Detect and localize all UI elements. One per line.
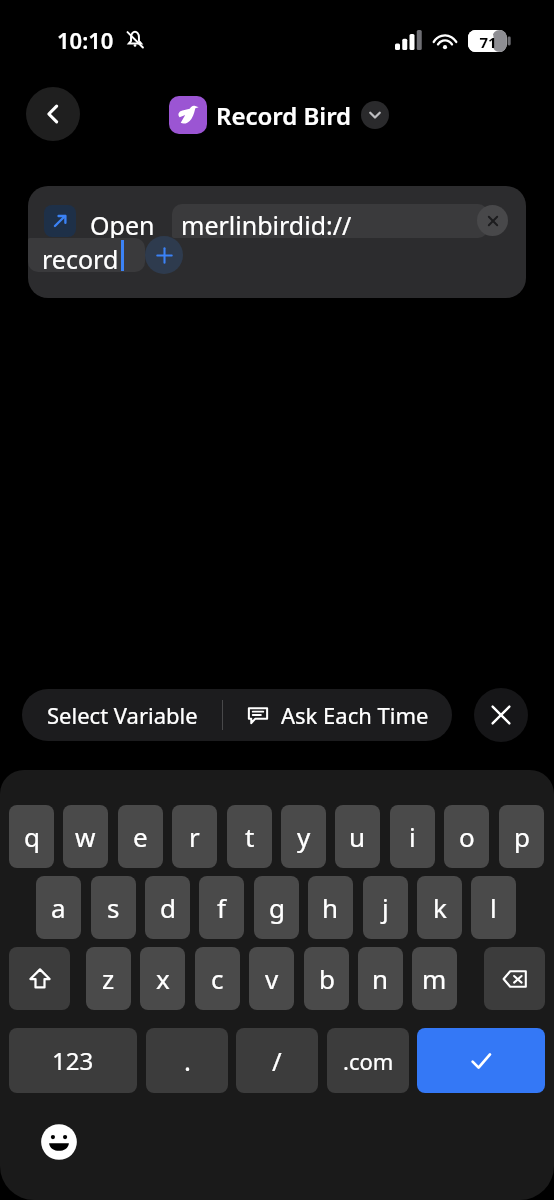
- staticText: i: [409, 819, 416, 854]
- button[interactable]: Shift: [9, 947, 70, 1010]
- staticText: Record Bird: [216, 99, 352, 132]
- staticText: w: [75, 819, 96, 854]
- staticText: 10:10: [57, 25, 114, 55]
- button[interactable]: y: [281, 805, 326, 868]
- staticText: p: [514, 819, 530, 854]
- staticText: j: [382, 890, 389, 925]
- staticText: s: [107, 890, 120, 925]
- staticText: v: [265, 961, 279, 996]
- staticText: t: [245, 819, 255, 854]
- button[interactable]: Done: [417, 1028, 545, 1093]
- button[interactable]: q: [9, 805, 54, 868]
- button[interactable]: Open: [28, 186, 526, 298]
- staticText: b: [319, 961, 335, 996]
- staticText: n: [372, 961, 389, 996]
- button[interactable]: .com: [327, 1028, 409, 1093]
- button[interactable]: a: [36, 876, 81, 939]
- staticText: d: [160, 890, 176, 925]
- staticText: y: [297, 819, 311, 854]
- staticText: Ask Each Time: [281, 700, 429, 730]
- button[interactable]: w: [63, 805, 108, 868]
- button[interactable]: v: [249, 947, 294, 1010]
- button[interactable]: h: [308, 876, 353, 939]
- staticText: o: [459, 819, 475, 854]
- button[interactable]: u: [335, 805, 380, 868]
- staticText: record: [42, 242, 119, 276]
- staticText: c: [211, 961, 224, 996]
- staticText: 123: [52, 1044, 94, 1077]
- button[interactable]: r: [172, 805, 217, 868]
- button[interactable]: 123: [9, 1028, 137, 1093]
- button[interactable]: z: [86, 947, 131, 1010]
- button[interactable]: Select Variable: [22, 689, 222, 741]
- button[interactable]: g: [254, 876, 299, 939]
- staticText: r: [189, 819, 200, 854]
- staticText: q: [24, 819, 40, 854]
- staticText: Select Variable: [47, 700, 198, 730]
- staticText: 71: [474, 32, 502, 52]
- button[interactable]: j: [363, 876, 408, 939]
- staticText: /: [272, 1043, 282, 1078]
- staticText: l: [490, 890, 497, 925]
- staticText: z: [102, 961, 115, 996]
- staticText: g: [269, 890, 285, 925]
- staticText: .com: [343, 1046, 394, 1076]
- staticText: e: [133, 819, 148, 854]
- staticText: h: [322, 890, 339, 925]
- button[interactable]: p: [499, 805, 544, 868]
- button[interactable]: .: [146, 1028, 228, 1093]
- button[interactable]: l: [471, 876, 516, 939]
- button[interactable]: Dismiss: [474, 688, 528, 742]
- button[interactable]: f: [199, 876, 244, 939]
- button[interactable]: Clear: [477, 205, 508, 236]
- button[interactable]: s: [91, 876, 136, 939]
- staticText: merlinbirdid://: [181, 208, 352, 242]
- button[interactable]: Record Bird: [216, 98, 389, 132]
- button[interactable]: n: [358, 947, 403, 1010]
- staticText: a: [51, 890, 66, 925]
- staticText: .: [184, 1043, 191, 1078]
- button[interactable]: b: [304, 947, 349, 1010]
- staticText: x: [156, 961, 170, 996]
- staticText: Open: [90, 208, 155, 242]
- staticText: f: [217, 890, 226, 925]
- button[interactable]: m: [412, 947, 457, 1010]
- button[interactable]: Back: [26, 87, 80, 141]
- button[interactable]: t: [227, 805, 272, 868]
- button[interactable]: o: [444, 805, 489, 868]
- button[interactable]: c: [195, 947, 240, 1010]
- button[interactable]: /: [236, 1028, 318, 1093]
- button[interactable]: k: [417, 876, 462, 939]
- button[interactable]: d: [145, 876, 190, 939]
- button[interactable]: e: [118, 805, 163, 868]
- button[interactable]: Emoji: [40, 1123, 78, 1161]
- button[interactable]: x: [140, 947, 185, 1010]
- button[interactable]: i: [390, 805, 435, 868]
- staticText: m: [422, 961, 447, 996]
- button[interactable]: Backspace: [484, 947, 545, 1010]
- button[interactable]: Ask Each Time: [223, 689, 452, 741]
- staticText: u: [349, 819, 366, 854]
- button[interactable]: Add variable: [145, 236, 183, 274]
- staticText: k: [433, 890, 447, 925]
